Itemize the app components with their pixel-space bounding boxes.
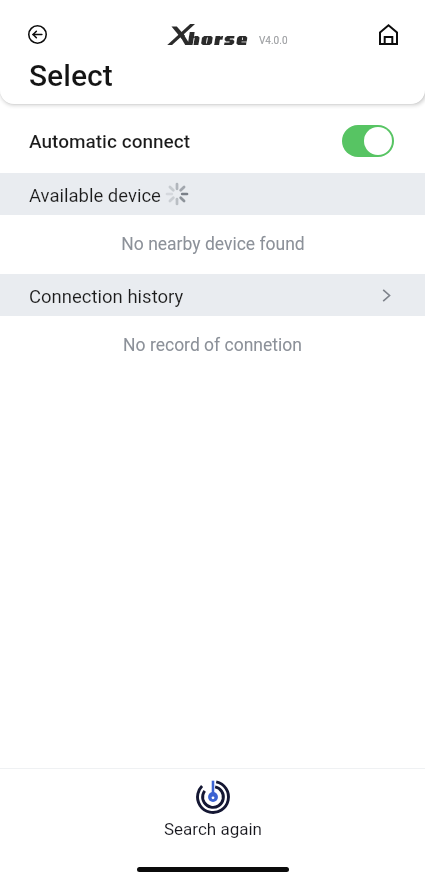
staticText: horse (187, 28, 249, 48)
staticText: V4.0.0 (259, 35, 288, 47)
button[interactable]: Home (375, 21, 401, 47)
staticText: No nearby device found (121, 234, 305, 255)
staticText: Select (29, 58, 113, 93)
staticText: Search again (164, 819, 262, 839)
button[interactable]: Back (24, 21, 50, 47)
staticText: Automatic connect (29, 130, 191, 152)
button[interactable]: Automatic connect (0, 109, 425, 173)
staticText: Available device (29, 185, 161, 207)
button[interactable]: Search again (0, 769, 425, 859)
button[interactable]: Automatic connect toggle (342, 125, 394, 157)
button[interactable]: Available device (0, 173, 425, 215)
button[interactable]: Connection history (0, 274, 425, 316)
staticText: Connection history (29, 286, 184, 308)
staticText: No record of connetion (123, 335, 302, 356)
